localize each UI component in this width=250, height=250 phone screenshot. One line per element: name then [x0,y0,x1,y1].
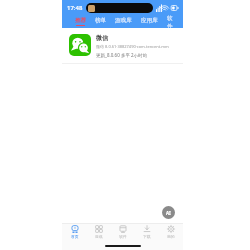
staticText: 推荐 [75,17,86,24]
staticText: 应用库 [141,17,158,24]
staticText: 榜单 [95,17,106,24]
staticText: 游戏库 [115,17,132,24]
button[interactable]: 应用库 [140,17,159,26]
button[interactable]: 软件库 [166,15,177,28]
button[interactable]: 下载 [135,223,159,242]
button[interactable]: 软件 [111,223,135,242]
button[interactable]: 推荐 [74,17,87,26]
staticText: 我的 [167,234,175,239]
button[interactable]: 微信 [62,30,183,62]
staticText: 游戏 [95,234,103,239]
staticText: 首页 [71,234,79,239]
staticText: 微信 [96,34,108,42]
button[interactable]: 游戏 [87,223,111,242]
button[interactable]: 我的 [159,223,183,242]
staticText: 软件库 [167,15,176,28]
staticText: AI [166,210,171,216]
staticText: 17:48 [67,4,83,12]
staticText: 更新_8.0.60 多平 2小时前 [96,52,148,58]
button[interactable]: 榜单 [94,17,107,26]
staticText: 微信 8.0.61·38827490·com.tencent.mm [96,44,169,49]
button[interactable]: 游戏库 [114,17,133,26]
button[interactable]: Assistant [162,206,175,219]
staticText: 下载 [143,234,151,239]
staticText: 软件 [119,234,127,239]
button[interactable]: 首页 [62,223,87,242]
